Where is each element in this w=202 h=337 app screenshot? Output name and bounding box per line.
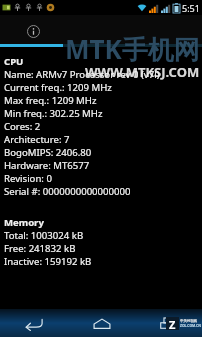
staticText: WWW.MTKSJ.COM: [85, 63, 200, 81]
staticText: 中关村在线: [180, 319, 197, 323]
button[interactable]: Recent apps: [135, 309, 202, 337]
button[interactable]: Back: [0, 309, 68, 337]
staticText: Name: ARMv7 Processor rev 0 (v7l): [4, 68, 160, 81]
staticText: Serial #: 0000000000000000: [4, 185, 131, 198]
staticText: Hardware: MT6577: [4, 159, 90, 172]
staticText: Max freq.: 1209 MHz: [4, 94, 97, 107]
button[interactable]: Info: [24, 22, 42, 40]
staticText: Cores: 2: [4, 120, 41, 133]
staticText: Revision: 0: [4, 172, 52, 185]
staticText: 5:51: [182, 2, 200, 14]
staticText: MTK手机网: [65, 31, 200, 67]
staticText: Min freq.: 302.25 MHz: [4, 107, 103, 120]
staticText: Memory: [4, 216, 44, 229]
staticText: Total: 1003024 kB: [4, 229, 84, 242]
staticText: Z: [169, 317, 176, 330]
staticText: Inactive: 159192 kB: [4, 255, 92, 268]
staticText: ZOL.COM.CN: [180, 323, 201, 328]
staticText: CPU: [4, 55, 24, 68]
button[interactable]: Home: [68, 309, 135, 337]
staticText: Architecture: 7: [4, 133, 70, 146]
staticText: Free: 241832 kB: [4, 242, 76, 255]
staticText: Current freq.: 1209 MHz: [4, 81, 112, 94]
staticText: BogoMIPS: 2406.80: [4, 146, 92, 159]
